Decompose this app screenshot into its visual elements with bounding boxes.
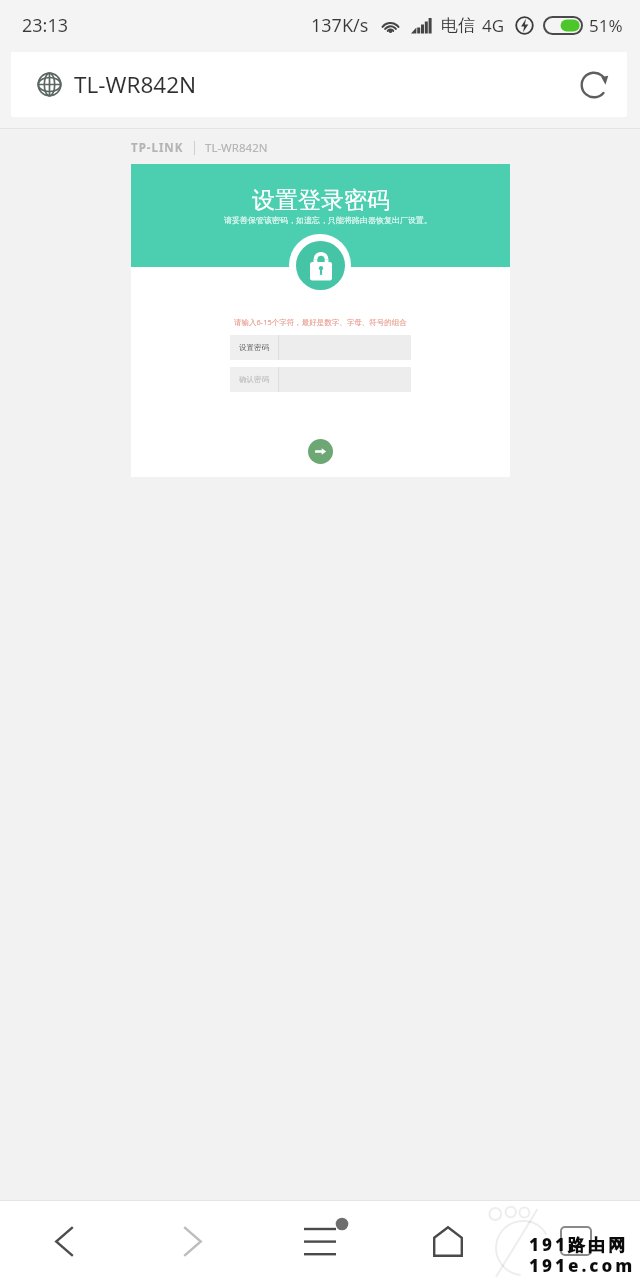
staticText: 设置密码 xyxy=(239,343,269,352)
staticText: 51% xyxy=(589,14,623,37)
button[interactable]: Home xyxy=(384,1202,512,1280)
staticText: TL-WR842N xyxy=(205,140,268,156)
button[interactable]: 设置密码 xyxy=(230,335,411,360)
button[interactable]: Back xyxy=(0,1202,128,1280)
staticText: 确认密码 xyxy=(239,375,269,384)
button[interactable]: Menu xyxy=(256,1202,384,1280)
staticText: 电信 xyxy=(441,15,475,36)
staticText: TL-WR842N xyxy=(74,69,197,100)
staticText: 请妥善保管该密码，如遗忘，只能将路由器恢复出厂设置。 xyxy=(224,215,432,225)
staticText: TP-LINK xyxy=(131,140,184,156)
staticText: 137K/s xyxy=(311,13,369,38)
button[interactable]: TL-WR842N xyxy=(11,52,627,117)
button[interactable]: Reload xyxy=(576,67,612,103)
staticText: 23:13 xyxy=(22,13,69,38)
staticText: 请输入6-15个字符，最好是数字、字母、符号的组合 xyxy=(234,317,407,327)
button[interactable]: Forward xyxy=(128,1202,256,1280)
button[interactable]: Next xyxy=(308,439,333,464)
button[interactable]: Tabs xyxy=(512,1202,640,1280)
staticText: 设置登录密码 xyxy=(252,186,390,215)
button[interactable]: 确认密码 xyxy=(230,367,411,392)
staticText: 4G xyxy=(482,14,505,37)
staticText: 191e.com xyxy=(529,1254,636,1277)
staticText: 191路由网 xyxy=(529,1233,628,1256)
